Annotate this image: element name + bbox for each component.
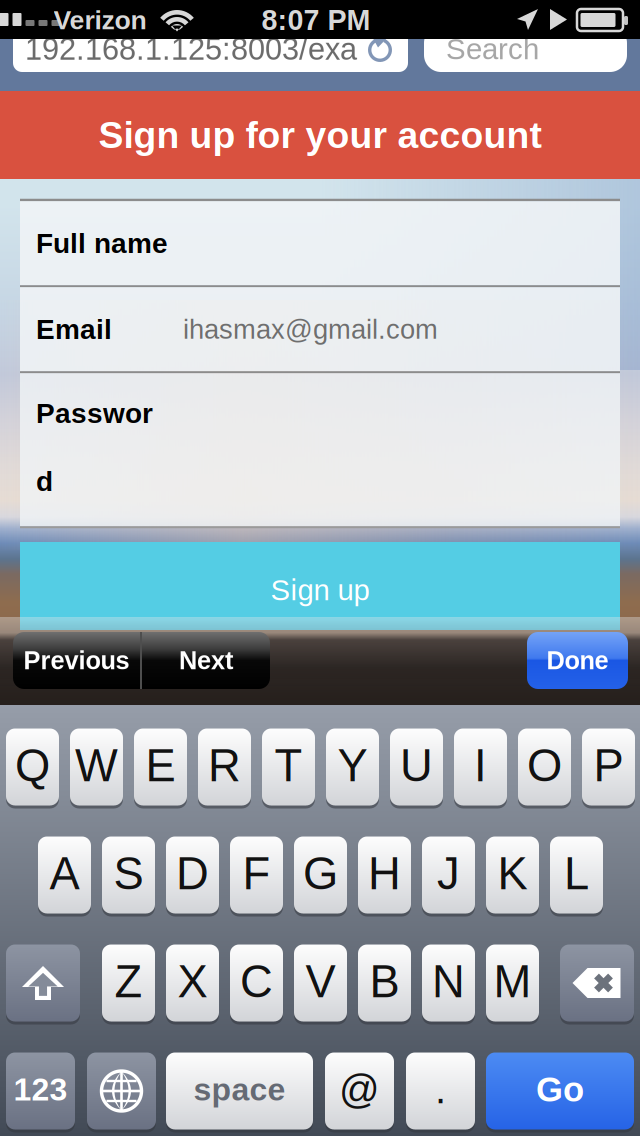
staticText: B xyxy=(369,956,399,1007)
button[interactable]: S xyxy=(102,835,155,915)
button[interactable]: J xyxy=(422,835,475,915)
button[interactable]: @ xyxy=(325,1051,394,1131)
staticText: Z xyxy=(114,956,142,1007)
staticText: Search xyxy=(446,33,539,65)
staticText: Sign up xyxy=(270,574,369,606)
staticText: F xyxy=(242,848,270,899)
staticText: 8:07 PM xyxy=(261,4,370,36)
staticText: space xyxy=(193,1072,285,1107)
button[interactable]: L xyxy=(550,835,603,915)
staticText: Go xyxy=(536,1070,584,1109)
staticText: U xyxy=(400,740,433,791)
staticText: V xyxy=(305,956,335,1007)
staticText: Q xyxy=(15,740,50,791)
staticText: ihasmax@gmail.com xyxy=(183,314,438,344)
button[interactable]: H xyxy=(358,835,411,915)
staticText: M xyxy=(493,956,531,1007)
button[interactable]: G xyxy=(294,835,347,915)
staticText: K xyxy=(497,848,527,899)
button[interactable]: Q xyxy=(6,727,59,807)
staticText: D xyxy=(176,848,209,899)
staticText: E xyxy=(145,740,175,791)
staticText: J xyxy=(437,848,460,899)
button[interactable]: space xyxy=(166,1051,313,1131)
button[interactable]: 192.168.1.125:8003/exa xyxy=(13,26,408,72)
staticText: Next xyxy=(179,646,233,675)
staticText: T xyxy=(274,740,302,791)
button[interactable]: Y xyxy=(326,727,379,807)
button[interactable]: Sign up xyxy=(20,542,620,630)
button[interactable]: N xyxy=(422,943,475,1023)
staticText: L xyxy=(564,848,589,899)
button[interactable]: B xyxy=(358,943,411,1023)
button[interactable]: 123 xyxy=(6,1051,75,1131)
button[interactable]: Delete xyxy=(560,943,634,1023)
button[interactable]: . xyxy=(406,1051,475,1131)
staticText: @ xyxy=(339,1067,380,1112)
staticText: . xyxy=(435,1067,446,1112)
staticText: O xyxy=(527,740,562,791)
button[interactable]: R xyxy=(198,727,251,807)
button[interactable]: M xyxy=(486,943,539,1023)
staticText: 192.168.1.125:8003/exa xyxy=(25,32,357,66)
staticText: W xyxy=(75,740,118,791)
staticText: A xyxy=(49,848,79,899)
button[interactable]: O xyxy=(518,727,571,807)
staticText: Sign up for your account xyxy=(98,114,541,156)
staticText: G xyxy=(303,848,338,899)
staticText: N xyxy=(432,956,465,1007)
staticText: d xyxy=(36,466,53,497)
button[interactable]: Done xyxy=(527,632,628,689)
staticText: P xyxy=(593,740,623,791)
staticText: S xyxy=(113,848,143,899)
staticText: Verizon xyxy=(53,5,146,35)
button[interactable]: Z xyxy=(102,943,155,1023)
button[interactable]: F xyxy=(230,835,283,915)
staticText: Y xyxy=(337,740,367,791)
staticText: 123 xyxy=(13,1072,67,1107)
staticText: I xyxy=(474,740,487,791)
button[interactable]: T xyxy=(262,727,315,807)
staticText: X xyxy=(177,956,207,1007)
button[interactable]: D xyxy=(166,835,219,915)
staticText: Email xyxy=(36,314,112,345)
button[interactable]: Next keyboard xyxy=(87,1051,156,1131)
staticText: H xyxy=(368,848,401,899)
staticText: Previous xyxy=(23,646,129,675)
button[interactable]: E xyxy=(134,727,187,807)
button[interactable]: C xyxy=(230,943,283,1023)
button[interactable]: K xyxy=(486,835,539,915)
button[interactable]: X xyxy=(166,943,219,1023)
button[interactable]: U xyxy=(390,727,443,807)
button[interactable]: P xyxy=(582,727,635,807)
staticText: Full name xyxy=(36,228,168,259)
button[interactable]: Shift xyxy=(6,943,80,1023)
button[interactable]: W xyxy=(70,727,123,807)
staticText: Passwor xyxy=(36,398,153,429)
staticText: Done xyxy=(546,646,608,675)
button[interactable]: Previous xyxy=(13,632,140,689)
button[interactable]: Next xyxy=(142,632,270,689)
button[interactable]: Go xyxy=(486,1051,634,1131)
button[interactable]: V xyxy=(294,943,347,1023)
staticText: C xyxy=(240,956,273,1007)
button[interactable]: A xyxy=(38,835,91,915)
button[interactable]: Search xyxy=(424,26,627,72)
button[interactable]: I xyxy=(454,727,507,807)
staticText: R xyxy=(208,740,241,791)
